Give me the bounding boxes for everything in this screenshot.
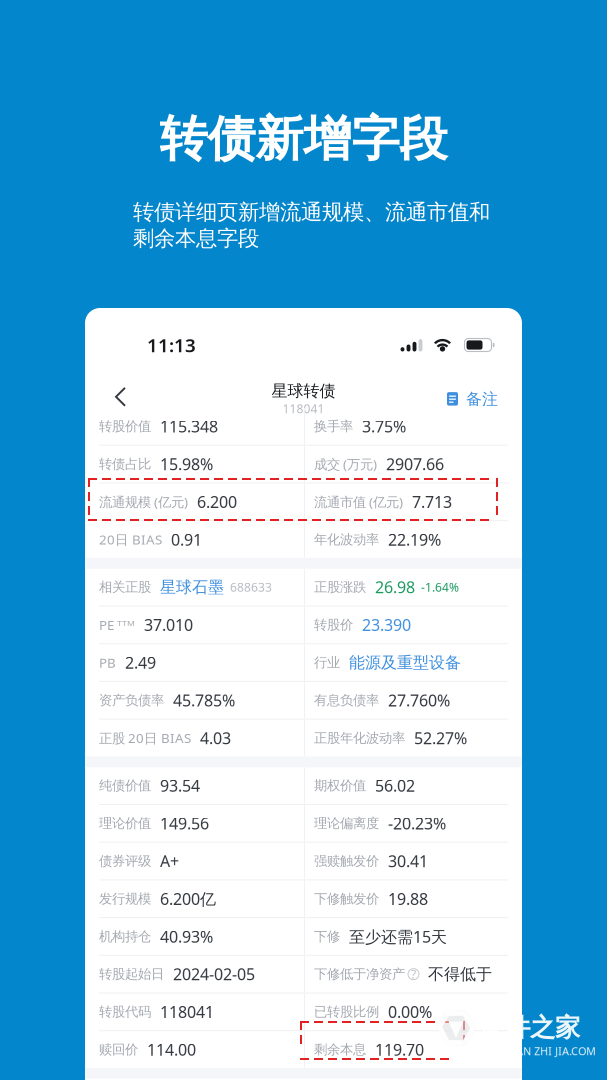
staticText: YING JIAN ZHI JIA.COM	[480, 1044, 596, 1058]
staticText: 118041	[282, 401, 324, 417]
staticText: 22.19%	[388, 529, 441, 550]
staticText: 下修触发价	[314, 891, 379, 907]
staticText: 转股价值	[99, 418, 151, 435]
staticText: 相关正股	[99, 579, 151, 595]
staticText: 15.98%	[160, 453, 213, 475]
button[interactable]: 备注	[447, 369, 522, 412]
staticText: 正股涨跌	[314, 579, 366, 595]
staticText: -1.64%	[421, 579, 459, 595]
staticText: PB	[99, 654, 116, 671]
staticText: 688633	[230, 579, 272, 595]
staticText: 27.760%	[388, 690, 450, 711]
staticText: 备注	[466, 389, 498, 409]
staticText: 2.49	[125, 652, 156, 673]
staticText: 机构持仓	[99, 928, 151, 945]
staticText: 纯债价值	[99, 777, 151, 794]
staticText: 发行规模	[99, 891, 151, 907]
staticText: 20日 BIAS	[99, 531, 162, 548]
staticText: 40.93%	[160, 926, 213, 947]
staticText: 118041	[160, 1001, 214, 1022]
staticText: 转债占比	[99, 456, 151, 472]
staticText: 至少还需15天	[349, 926, 447, 947]
staticText: 4.03	[200, 727, 231, 748]
staticText: -20.23%	[388, 813, 446, 834]
staticText: 剩余本息	[314, 1041, 366, 1058]
staticText: 债券评级	[99, 853, 151, 869]
staticText: 11:13	[147, 333, 196, 357]
staticText: 理论偏离度	[314, 815, 379, 832]
staticText: 流通规模 (亿元)	[99, 493, 188, 511]
staticText: 26.98	[375, 576, 415, 598]
staticText: PE ᵀᵀᴹ	[99, 616, 135, 634]
staticText: 硬件之家	[480, 1012, 580, 1043]
staticText: 转债详细页新增流通规模、流通市值和	[133, 199, 490, 225]
staticText: 期权价值	[314, 777, 366, 794]
staticText: A+	[160, 850, 179, 872]
staticText: 6.200亿	[160, 888, 216, 909]
staticText: 强赎触发价	[314, 853, 379, 869]
staticText: 星球石墨	[160, 577, 224, 597]
staticText: 星球转债	[271, 381, 335, 401]
staticText: 30.41	[388, 850, 428, 872]
staticText: 成交 (万元)	[314, 455, 377, 473]
staticText: 52.27%	[414, 727, 467, 748]
staticText: 资产负债率	[99, 692, 164, 708]
staticText: 2024-02-05	[173, 963, 255, 985]
staticText: 转股代码	[99, 1004, 151, 1020]
staticText: 流通市值 (亿元)	[314, 493, 403, 511]
staticText: 转股起始日	[99, 966, 164, 982]
staticText: 行业	[314, 654, 340, 671]
staticText: 正股年化波动率	[314, 730, 405, 746]
staticText: 已转股比例	[314, 1004, 379, 1020]
staticText: 年化波动率	[314, 531, 379, 548]
staticText: 0.91	[171, 529, 202, 550]
staticText: 转债新增字段	[159, 109, 447, 168]
staticText: 理论价值	[99, 815, 151, 832]
staticText: 换手率	[314, 418, 353, 435]
staticText: 赎回价	[99, 1041, 138, 1058]
staticText: 2907.66	[386, 453, 444, 475]
staticText: 3.75%	[362, 416, 406, 437]
staticText: 23.390	[362, 614, 411, 635]
staticText: 下修	[314, 928, 340, 945]
staticText: 45.785%	[173, 690, 235, 711]
staticText: 114.00	[147, 1039, 196, 1060]
staticText: 剩余本息字段	[133, 225, 259, 251]
staticText: 能源及重型设备	[349, 653, 461, 672]
staticText: 37.010	[144, 614, 193, 635]
staticText: ?	[411, 966, 416, 982]
staticText: 56.02	[375, 775, 415, 796]
staticText: 不得低于	[428, 964, 492, 984]
button[interactable]: Back	[85, 369, 143, 412]
staticText: 正股 20日 BIAS	[99, 729, 191, 747]
staticText: 93.54	[160, 775, 200, 796]
staticText: 0.00%	[388, 1001, 432, 1022]
staticText: 19.88	[388, 888, 428, 909]
staticText: 转股价	[314, 617, 353, 633]
staticText: 115.348	[160, 416, 218, 437]
staticText: 119.70	[375, 1039, 424, 1060]
staticText: 6.200	[197, 491, 237, 512]
staticText: 有息负债率	[314, 692, 379, 708]
staticText: 7.713	[412, 491, 452, 512]
staticText: 149.56	[160, 813, 209, 834]
staticText: 下修低于净资产	[314, 966, 405, 982]
